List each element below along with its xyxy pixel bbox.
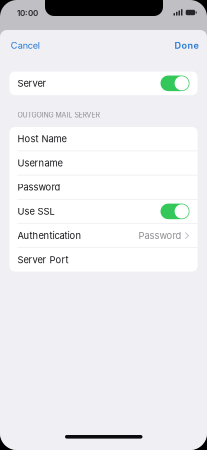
staticText: OUTGOING MAIL SERVER: [17, 111, 99, 119]
button[interactable]: Use SSL: [9, 200, 197, 223]
staticText: Done: [174, 40, 198, 51]
button[interactable]: Server: [9, 71, 197, 95]
button[interactable]: Authentication: [9, 224, 197, 247]
staticText: Server: [17, 78, 46, 89]
staticText: Password: [138, 230, 181, 241]
button[interactable]: Cancel: [5, 33, 49, 58]
button[interactable]: Server Port: [9, 248, 197, 272]
staticText: Authentication: [17, 230, 81, 241]
staticText: Cancel: [11, 40, 40, 51]
button[interactable]: Host Name: [9, 127, 197, 151]
staticText: Use SSL: [17, 206, 54, 217]
button[interactable]: Done: [160, 33, 207, 58]
staticText: Password: [17, 182, 60, 193]
staticText: Server Port: [17, 254, 68, 265]
button[interactable]: Username: [9, 151, 197, 175]
staticText: Username: [17, 157, 62, 169]
staticText: 10:00: [17, 8, 38, 18]
staticText: Host Name: [17, 133, 66, 144]
button[interactable]: Password: [9, 175, 197, 199]
